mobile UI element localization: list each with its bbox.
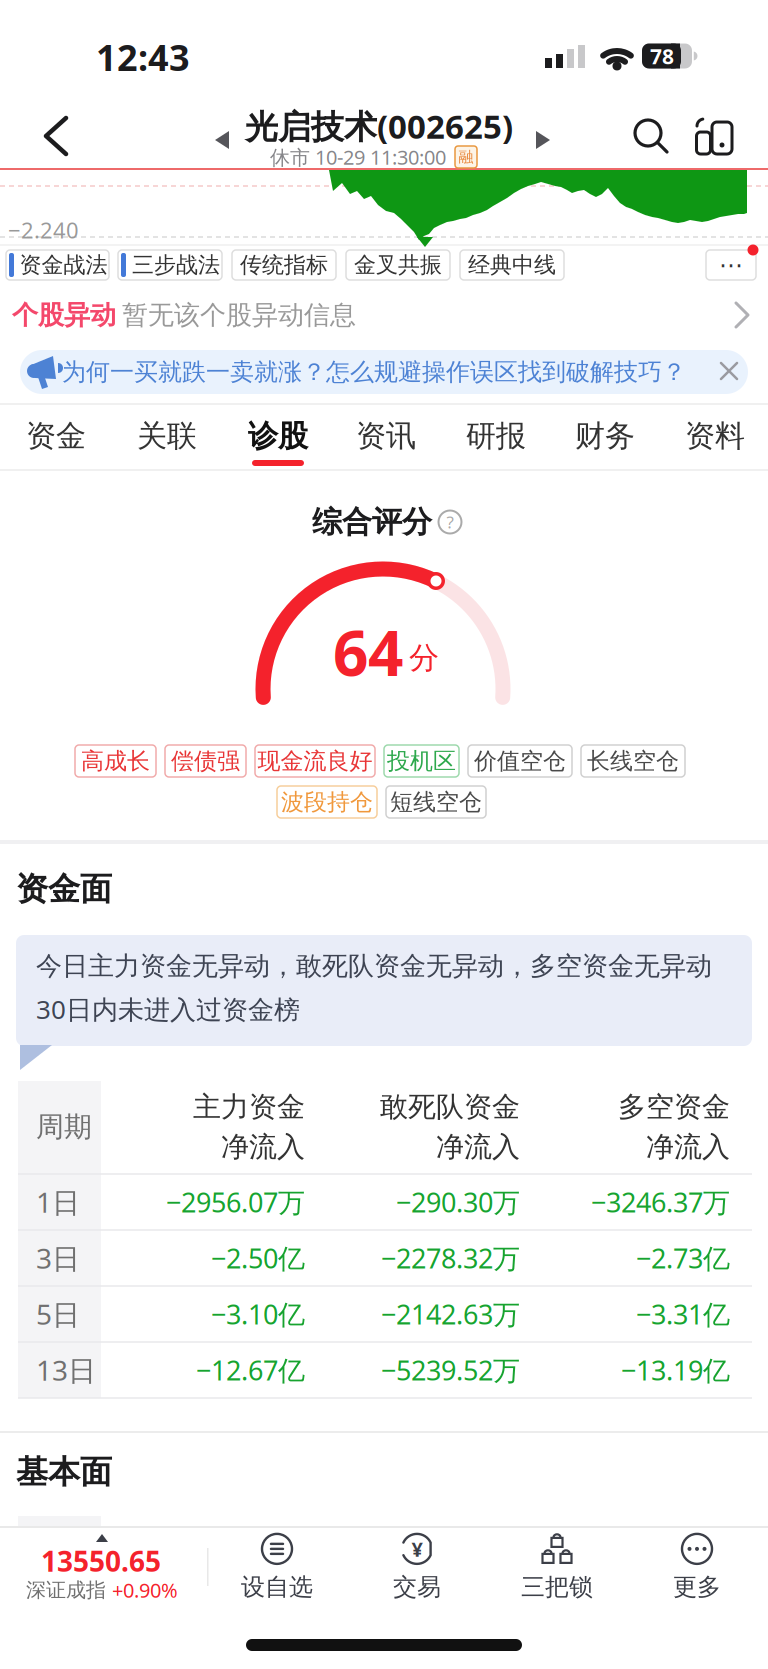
button[interactable]: 为何一买就跌一卖就涨？怎么规避操作误区找到破解技巧？: [20, 350, 748, 394]
button[interactable]: Next stock: [536, 131, 550, 149]
staticText: −290.30万: [396, 1184, 520, 1220]
staticText: −2956.07万: [166, 1184, 305, 1220]
button[interactable]: 设自选: [212, 1529, 342, 1605]
staticText: 资金面: [16, 869, 112, 909]
staticText: 主力资金: [193, 1089, 305, 1125]
button[interactable]: 经典中线: [460, 250, 564, 280]
staticText: 1日: [36, 1183, 80, 1221]
staticText: 个股异动: [12, 299, 116, 331]
staticText: 分: [409, 639, 439, 677]
staticText: 13日: [36, 1351, 96, 1389]
staticText: 净流入: [646, 1129, 730, 1165]
staticText: +0.90%: [112, 1576, 178, 1604]
staticText: 12:43: [96, 32, 190, 81]
staticText: 财务: [575, 417, 635, 455]
staticText: 三步战法: [132, 251, 220, 279]
staticText: 多空资金: [618, 1089, 730, 1125]
button[interactable]: 财务: [555, 405, 655, 467]
button[interactable]: More strategies: [706, 250, 756, 280]
button[interactable]: 关联: [117, 405, 217, 467]
button[interactable]: 诊股: [228, 405, 328, 467]
staticText: 资金: [26, 417, 86, 455]
button[interactable]: 传统指标: [232, 250, 336, 280]
button[interactable]: Previous stock: [215, 131, 229, 149]
button[interactable]: 短线空仓: [386, 786, 486, 818]
staticText: 更多: [673, 1572, 721, 1602]
button[interactable]: 高成长: [75, 745, 156, 777]
button[interactable]: Back: [44, 116, 70, 156]
staticText: 资金战法: [19, 251, 107, 279]
button[interactable]: 现金流良好: [255, 745, 375, 777]
staticText: −3246.37万: [591, 1184, 730, 1220]
button[interactable]: 个股异动: [0, 289, 768, 341]
button[interactable]: 13550.65: [0, 1528, 204, 1604]
staticText: 今日主力资金无异动，敢死队资金无异动，多空资金无异动: [36, 950, 712, 982]
staticText: ⋯: [719, 251, 743, 279]
staticText: −2142.63万: [381, 1296, 520, 1332]
staticText: 短线空仓: [390, 787, 482, 816]
staticText: 研报: [466, 417, 526, 455]
button[interactable]: 金叉共振: [346, 250, 450, 280]
staticText: 深证成指: [26, 1577, 106, 1603]
button[interactable]: 资讯: [336, 405, 436, 467]
staticText: 高成长: [81, 746, 150, 775]
button[interactable]: Rotate to landscape: [694, 117, 734, 157]
staticText: −3.31亿: [636, 1296, 730, 1332]
staticText: 偿债强: [171, 746, 240, 775]
staticText: −5239.52万: [381, 1352, 520, 1388]
button[interactable]: 研报: [446, 405, 546, 467]
staticText: 净流入: [221, 1129, 305, 1165]
button[interactable]: 长线空仓: [581, 745, 685, 777]
staticText: −2.73亿: [636, 1240, 730, 1276]
button[interactable]: 资料: [665, 405, 765, 467]
staticText: 金叉共振: [354, 251, 442, 279]
staticText: 交易: [393, 1572, 441, 1602]
button[interactable]: 波段持仓: [277, 786, 377, 818]
staticText: 暂无该个股异动信息: [122, 299, 356, 331]
staticText: 30日内未进入过资金榜: [36, 991, 300, 1027]
button[interactable]: Search: [634, 119, 670, 155]
button[interactable]: Dismiss: [719, 361, 739, 381]
button[interactable]: 更多: [632, 1529, 762, 1605]
button[interactable]: 价值空仓: [468, 745, 572, 777]
staticText: 敢死队资金: [380, 1089, 520, 1125]
staticText: 三把锁: [521, 1572, 593, 1602]
staticText: 基本面: [16, 1452, 112, 1492]
staticText: 13550.65: [41, 1542, 161, 1580]
staticText: 光启技术(002625): [245, 103, 513, 148]
staticText: 综合评分: [312, 503, 432, 541]
staticText: 波段持仓: [281, 787, 373, 816]
staticText: 3日: [36, 1239, 80, 1277]
staticText: 投机区: [387, 746, 456, 775]
button[interactable]: 投机区: [384, 745, 459, 777]
staticText: 关联: [137, 417, 197, 455]
staticText: ¥: [411, 1535, 422, 1562]
staticText: 现金流良好: [257, 746, 372, 775]
staticText: −13.19亿: [621, 1352, 730, 1388]
staticText: −2.50亿: [211, 1240, 305, 1276]
button[interactable]: 偿债强: [165, 745, 246, 777]
staticText: 5日: [36, 1295, 80, 1333]
staticText: −3.10亿: [211, 1296, 305, 1332]
button[interactable]: About score: [438, 510, 461, 533]
staticText: −12.67亿: [196, 1352, 305, 1388]
staticText: 融: [458, 148, 473, 166]
staticText: 休市 10-29 11:30:00: [270, 143, 446, 171]
staticText: 长线空仓: [587, 746, 679, 775]
button[interactable]: ¥: [352, 1529, 482, 1605]
button[interactable]: 资金战法: [6, 250, 109, 280]
staticText: 为何一买就跌一卖就涨？怎么规避操作误区找到破解技巧？: [62, 357, 686, 387]
button[interactable]: 三步战法: [118, 250, 222, 280]
staticText: 资讯: [356, 417, 416, 455]
staticText: −2.240: [8, 215, 79, 245]
staticText: 设自选: [241, 1572, 313, 1602]
staticText: 78: [650, 42, 674, 70]
staticText: 周期: [36, 1109, 92, 1145]
staticText: 净流入: [436, 1129, 520, 1165]
staticText: 传统指标: [240, 251, 328, 279]
staticText: −2278.32万: [381, 1240, 520, 1276]
staticText: 价值空仓: [474, 746, 566, 775]
staticText: ?: [446, 510, 453, 534]
button[interactable]: 三把锁: [492, 1529, 622, 1605]
button[interactable]: 资金: [6, 405, 106, 467]
